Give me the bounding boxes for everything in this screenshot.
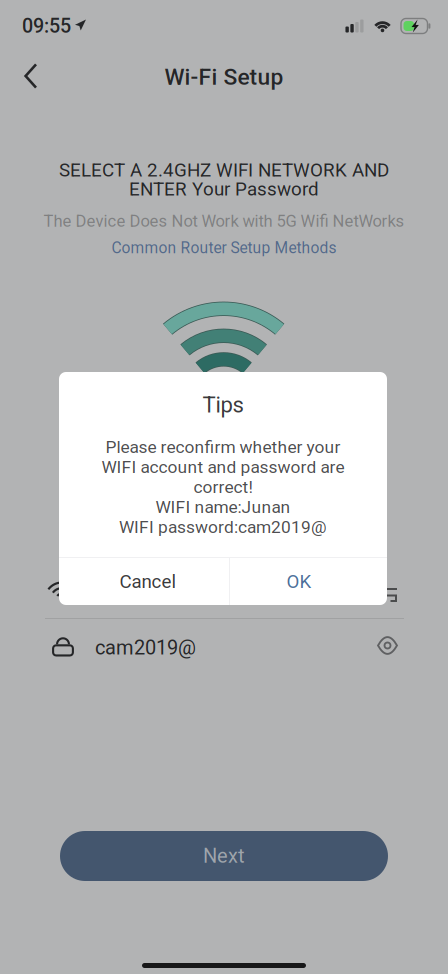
staticText: Next bbox=[203, 844, 245, 868]
staticText: The Device Does Not Work with 5G Wifi Ne… bbox=[43, 211, 404, 231]
staticText: Cancel bbox=[119, 571, 176, 592]
button[interactable]: Cancel bbox=[59, 558, 237, 605]
staticText: cam2019@ bbox=[95, 636, 196, 659]
staticText: WIFI account and password are bbox=[101, 457, 344, 477]
staticText: Junan bbox=[95, 580, 150, 603]
staticText: WIFI name:Junan bbox=[155, 497, 290, 517]
button[interactable]: Junan bbox=[0, 562, 448, 618]
button[interactable]: cam2019@ bbox=[0, 619, 448, 675]
staticText: 09:55 bbox=[22, 14, 71, 37]
staticText: Common Router Setup Methods bbox=[111, 239, 336, 257]
button[interactable]: Back bbox=[11, 52, 50, 100]
staticText: WIFI password:cam2019@ bbox=[119, 517, 327, 537]
staticText: OK bbox=[286, 571, 311, 592]
staticText: Please reconfirm whether your bbox=[105, 437, 340, 457]
staticText: SELECT A 2.4GHZ WIFI NETWORK AND bbox=[59, 159, 389, 181]
button[interactable]: Next bbox=[60, 831, 388, 881]
button[interactable]: OK bbox=[220, 558, 378, 605]
staticText: Tips bbox=[202, 392, 243, 418]
staticText: ENTER Your Password bbox=[129, 178, 319, 200]
button[interactable]: Common Router Setup Methods bbox=[0, 238, 448, 258]
staticText: correct! bbox=[193, 477, 252, 497]
staticText: Wi-Fi Setup bbox=[164, 64, 283, 90]
